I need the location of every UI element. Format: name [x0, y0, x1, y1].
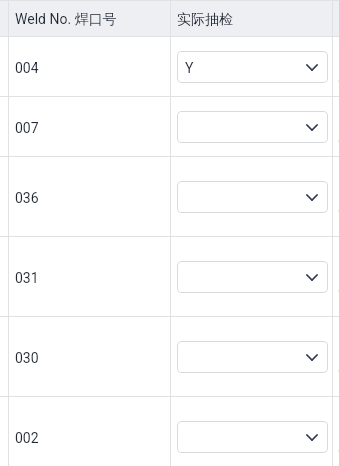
button[interactable]: Select actual sampling value [177, 51, 328, 83]
staticText: 036 [15, 190, 39, 206]
button[interactable]: Weld No. 焊口号 [9, 0, 170, 37]
staticText: 007 [15, 120, 39, 136]
staticText: 030 [15, 350, 39, 366]
button[interactable]: Select actual sampling value [177, 341, 328, 373]
button[interactable]: 007 [9, 97, 170, 157]
staticText: Y [185, 60, 194, 76]
staticText: Weld No. 焊口号 [15, 11, 117, 29]
staticText: 004 [15, 60, 39, 76]
staticText: 实际抽检 [177, 11, 233, 29]
button[interactable]: 实际抽检 [171, 0, 332, 37]
button[interactable]: Select actual sampling value [177, 181, 328, 213]
staticText: 002 [15, 430, 39, 446]
button[interactable]: 030 [9, 317, 170, 397]
button[interactable]: 036 [9, 157, 170, 237]
button[interactable]: 004 [9, 37, 170, 97]
button[interactable]: Select actual sampling value [177, 111, 328, 143]
button[interactable]: Select actual sampling value [177, 421, 328, 453]
staticText: 031 [15, 270, 39, 286]
button[interactable]: 031 [9, 237, 170, 317]
button[interactable]: Select actual sampling value [177, 261, 328, 293]
button[interactable]: 002 [9, 397, 170, 466]
